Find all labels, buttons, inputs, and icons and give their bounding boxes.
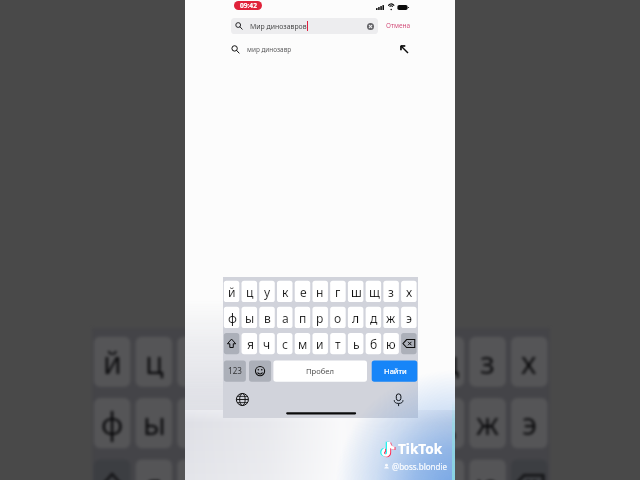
staticText: т [355,465,370,480]
staticText: 09:42 [240,1,257,10]
staticText: Пробел [306,366,334,376]
button[interactable]: ф [224,307,240,328]
staticText: й [228,284,236,300]
button[interactable]: Пробел [273,360,367,381]
button[interactable]: д [366,307,382,328]
staticText: й [103,342,122,383]
button[interactable]: Emoji [249,360,271,381]
staticText: а [229,403,246,444]
button[interactable]: Switch keyboard language [234,391,250,408]
button[interactable]: р [312,307,328,328]
button[interactable]: м [295,333,311,354]
staticText: п [299,310,307,326]
staticText: э [522,403,537,444]
staticText: б [370,336,378,352]
button[interactable]: Мир динозавров [231,18,378,34]
staticText: 123 [228,365,242,376]
staticText: е [300,284,307,300]
button[interactable]: ж [383,307,399,328]
button[interactable]: у [259,281,275,302]
button[interactable]: н [312,281,328,302]
staticText: д [437,403,456,444]
staticText: ж [386,310,396,326]
button[interactable]: мир динозавр [222,38,417,60]
button[interactable]: л [348,307,364,328]
button[interactable]: х [401,281,417,302]
button[interactable]: Shift [224,333,240,354]
button[interactable]: е [295,281,311,302]
button[interactable]: 123 [224,360,246,381]
button[interactable]: ш [348,281,364,302]
staticText: м [298,336,308,352]
staticText: ф [228,310,237,326]
staticText: Мир динозавров [250,22,307,31]
staticText: з [480,342,495,383]
staticText: щ [369,284,380,300]
staticText: д [370,310,378,326]
staticText: х [406,284,413,300]
staticText: з [388,284,394,300]
button[interactable]: ю [383,333,399,354]
button[interactable]: Backspace [401,333,417,354]
staticText: мир динозавр [247,45,292,54]
staticText: Найти [384,366,407,376]
staticText: б [437,465,456,480]
staticText: ф [101,403,124,444]
staticText: к [229,342,246,383]
button[interactable]: ц [242,281,258,302]
button[interactable]: Dictation [391,391,407,408]
button[interactable]: Use suggestion [397,42,411,56]
button[interactable]: п [295,307,311,328]
button[interactable]: з [383,281,399,302]
staticText: ц [246,284,254,300]
staticText: к [282,284,289,300]
staticText: ч [263,336,271,352]
button[interactable]: Найти [372,360,418,381]
staticText: а [282,310,289,326]
staticText: л [395,403,413,444]
staticText: с [282,336,288,352]
button[interactable]: ы [242,307,258,328]
button[interactable]: щ [366,281,382,302]
staticText: Отмена [386,21,411,30]
staticText: ь [353,336,360,352]
staticText: ш [391,342,418,383]
staticText: я [247,336,254,352]
staticText: э [406,310,412,326]
button[interactable]: а [277,307,293,328]
button[interactable]: и [312,333,328,354]
staticText: в [264,310,271,326]
button[interactable]: г [330,281,346,302]
button[interactable]: ь [348,333,364,354]
staticText: г [355,342,369,383]
button[interactable]: й [224,281,240,302]
button[interactable]: э [401,307,417,328]
button[interactable]: Clear text [364,20,376,32]
button[interactable]: б [366,333,382,354]
staticText: и [316,336,324,352]
staticText: г [335,284,341,300]
button[interactable]: к [277,281,293,302]
staticText: н [316,284,324,300]
staticText: п [270,403,289,444]
staticText: л [352,310,360,326]
staticText: ю [475,465,500,480]
button[interactable]: я [242,333,258,354]
staticText: ь [396,465,413,480]
button[interactable]: т [330,333,346,354]
button[interactable]: ч [259,333,275,354]
staticText: TikTok [398,439,443,458]
staticText: ж [476,403,499,444]
staticText: ю [386,336,396,352]
button[interactable]: с [277,333,293,354]
staticText: о [353,403,371,444]
staticText: е [271,342,288,383]
button[interactable]: о [330,307,346,328]
button[interactable]: Отмена [382,19,415,32]
staticText: р [316,310,324,326]
button[interactable]: в [259,307,275,328]
